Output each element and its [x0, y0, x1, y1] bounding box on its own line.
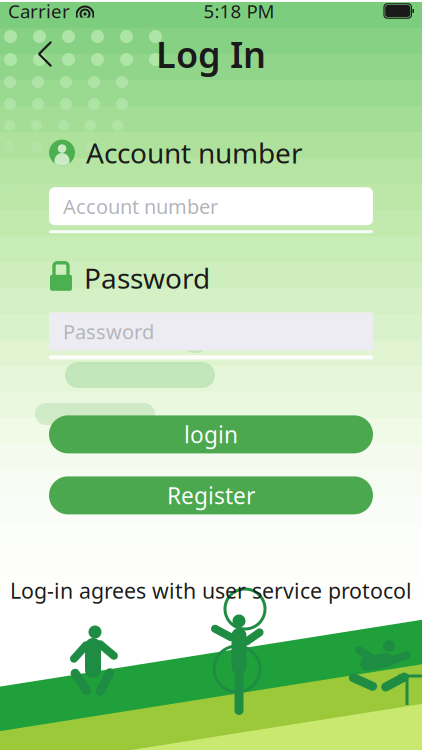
- button[interactable]: Register: [49, 476, 373, 514]
- button[interactable]: Back: [22, 31, 68, 77]
- staticText: Log In: [156, 30, 266, 78]
- staticText: Register: [167, 480, 255, 510]
- button[interactable]: Log-in agrees with user service protocol: [0, 578, 422, 602]
- staticText: Password: [63, 318, 154, 345]
- button[interactable]: login: [49, 415, 373, 453]
- staticText: Account number: [86, 134, 303, 171]
- staticText: 5:18 PM: [203, 0, 274, 23]
- staticText: Log-in agrees with user service protocol: [10, 576, 412, 604]
- staticText: Password: [84, 259, 210, 296]
- staticText: Carrier: [8, 0, 70, 23]
- staticText: login: [184, 419, 238, 449]
- staticText: Account number: [63, 193, 218, 219]
